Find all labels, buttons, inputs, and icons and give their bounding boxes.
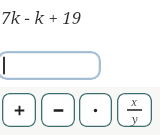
button[interactable]: Fraction bbox=[117, 93, 152, 127]
button[interactable]: Multiply bbox=[79, 93, 112, 127]
button[interactable]: Plus bbox=[2, 93, 36, 127]
staticText: 7k − k + 19 bbox=[1, 6, 82, 29]
button[interactable]: Answer input field bbox=[0, 51, 101, 80]
staticText: x bbox=[131, 94, 138, 109]
staticText: y bbox=[132, 111, 138, 126]
button[interactable]: Minus bbox=[41, 93, 75, 127]
